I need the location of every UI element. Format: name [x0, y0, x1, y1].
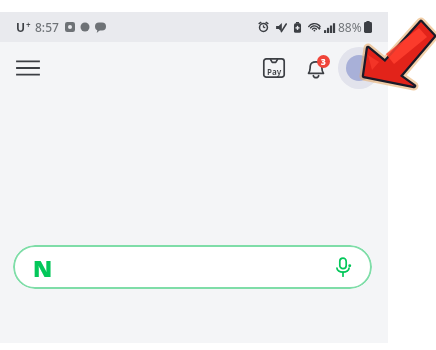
- staticText: N: [33, 252, 53, 283]
- button[interactable]: Search: [13, 245, 372, 289]
- staticText: +: [26, 19, 31, 30]
- staticText: 8:57: [35, 19, 59, 35]
- staticText: 3: [321, 56, 326, 67]
- button[interactable]: Pay: [254, 48, 294, 88]
- button[interactable]: Profile: [338, 47, 380, 89]
- staticText: U: [16, 19, 26, 35]
- button[interactable]: Voice search: [328, 252, 358, 282]
- button[interactable]: Notifications: [296, 48, 336, 88]
- staticText: 88%: [338, 19, 362, 35]
- staticText: Pay: [267, 66, 282, 77]
- button[interactable]: Menu: [8, 48, 48, 88]
